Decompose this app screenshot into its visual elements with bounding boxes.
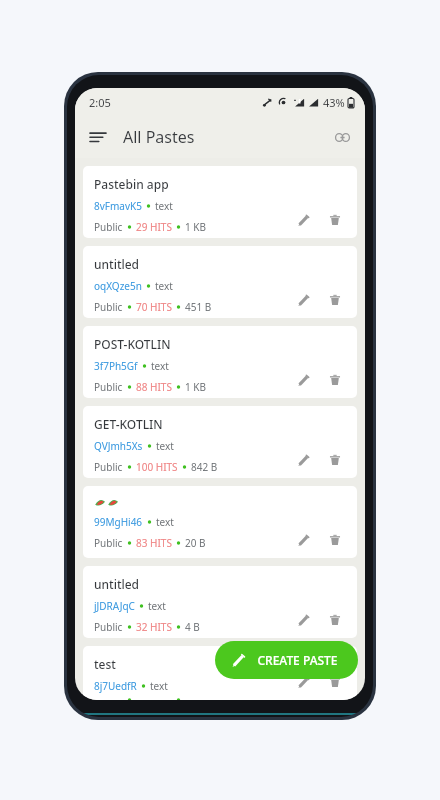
- staticText: text: [148, 599, 166, 613]
- staticText: text: [156, 515, 174, 529]
- button[interactable]: Pastebin app: [83, 166, 357, 238]
- button[interactable]: untitled: [83, 566, 357, 638]
- button[interactable]: Edit paste: [291, 368, 315, 392]
- button[interactable]: Delete paste: [323, 368, 347, 392]
- staticText: 1 KB: [185, 380, 207, 394]
- staticText: 70 HITS: [136, 300, 172, 314]
- button[interactable]: POST-KOTLIN: [83, 326, 357, 398]
- staticText: 43%: [323, 95, 345, 110]
- staticText: text: [155, 199, 173, 213]
- staticText: Public: [94, 300, 123, 314]
- staticText: 8j7UedfR: [94, 679, 137, 693]
- staticText: 842 B: [191, 460, 218, 474]
- staticText: Public: [94, 220, 123, 234]
- staticText: test: [94, 656, 116, 672]
- staticText: text: [150, 679, 168, 693]
- button[interactable]: Edit paste: [291, 528, 315, 552]
- button[interactable]: CREATE PASTE: [215, 641, 358, 679]
- button[interactable]: 99MgHi46: [83, 486, 357, 558]
- staticText: CREATE PASTE: [257, 652, 338, 668]
- staticText: Public: [94, 460, 123, 474]
- staticText: text: [155, 279, 173, 293]
- button[interactable]: Delete paste: [323, 448, 347, 472]
- button[interactable]: Copy link: [325, 120, 359, 154]
- button[interactable]: test: [83, 646, 357, 700]
- staticText: QVJmh5Xs: [94, 439, 143, 453]
- staticText: text: [151, 359, 169, 373]
- staticText: 20 B: [185, 536, 206, 550]
- staticText: 88 HITS: [136, 380, 172, 394]
- button[interactable]: Edit paste: [291, 670, 315, 694]
- staticText: GET-KOTLIN: [94, 416, 163, 432]
- button[interactable]: Delete paste: [323, 208, 347, 232]
- staticText: untitled: [94, 576, 140, 592]
- staticText: text: [156, 439, 174, 453]
- button[interactable]: Delete paste: [323, 288, 347, 312]
- staticText: Public: [94, 380, 123, 394]
- button[interactable]: GET-KOTLIN: [83, 406, 357, 478]
- staticText: All Pastes: [123, 126, 195, 148]
- button[interactable]: Open navigation menu: [81, 120, 115, 154]
- staticText: 4 B: [185, 620, 200, 634]
- button[interactable]: Delete paste: [323, 670, 347, 694]
- staticText: 2:05: [89, 95, 111, 110]
- staticText: 100 HITS: [136, 460, 178, 474]
- staticText: 451 B: [185, 300, 212, 314]
- staticText: POST-KOTLIN: [94, 336, 171, 352]
- button[interactable]: Edit paste: [291, 288, 315, 312]
- button[interactable]: Edit paste: [291, 208, 315, 232]
- staticText: 29 HITS: [136, 220, 172, 234]
- button[interactable]: Delete paste: [323, 608, 347, 632]
- staticText: 3f7Ph5Gf: [94, 359, 138, 373]
- button[interactable]: untitled: [83, 246, 357, 318]
- button[interactable]: Delete paste: [323, 528, 347, 552]
- staticText: untitled: [94, 256, 140, 272]
- staticText: 1 KB: [185, 220, 207, 234]
- button[interactable]: Edit paste: [291, 608, 315, 632]
- staticText: 83 HITS: [136, 536, 172, 550]
- staticText: jJDRAJqC: [94, 599, 135, 613]
- staticText: 99MgHi46: [94, 515, 143, 529]
- button[interactable]: Edit paste: [291, 448, 315, 472]
- staticText: Public: [94, 536, 123, 550]
- staticText: 32 HITS: [136, 620, 172, 634]
- staticText: Public: [94, 620, 123, 634]
- staticText: 8vFmavK5: [94, 199, 142, 213]
- staticText: oqXQze5n: [94, 279, 142, 293]
- staticText: Pastebin app: [94, 176, 169, 192]
